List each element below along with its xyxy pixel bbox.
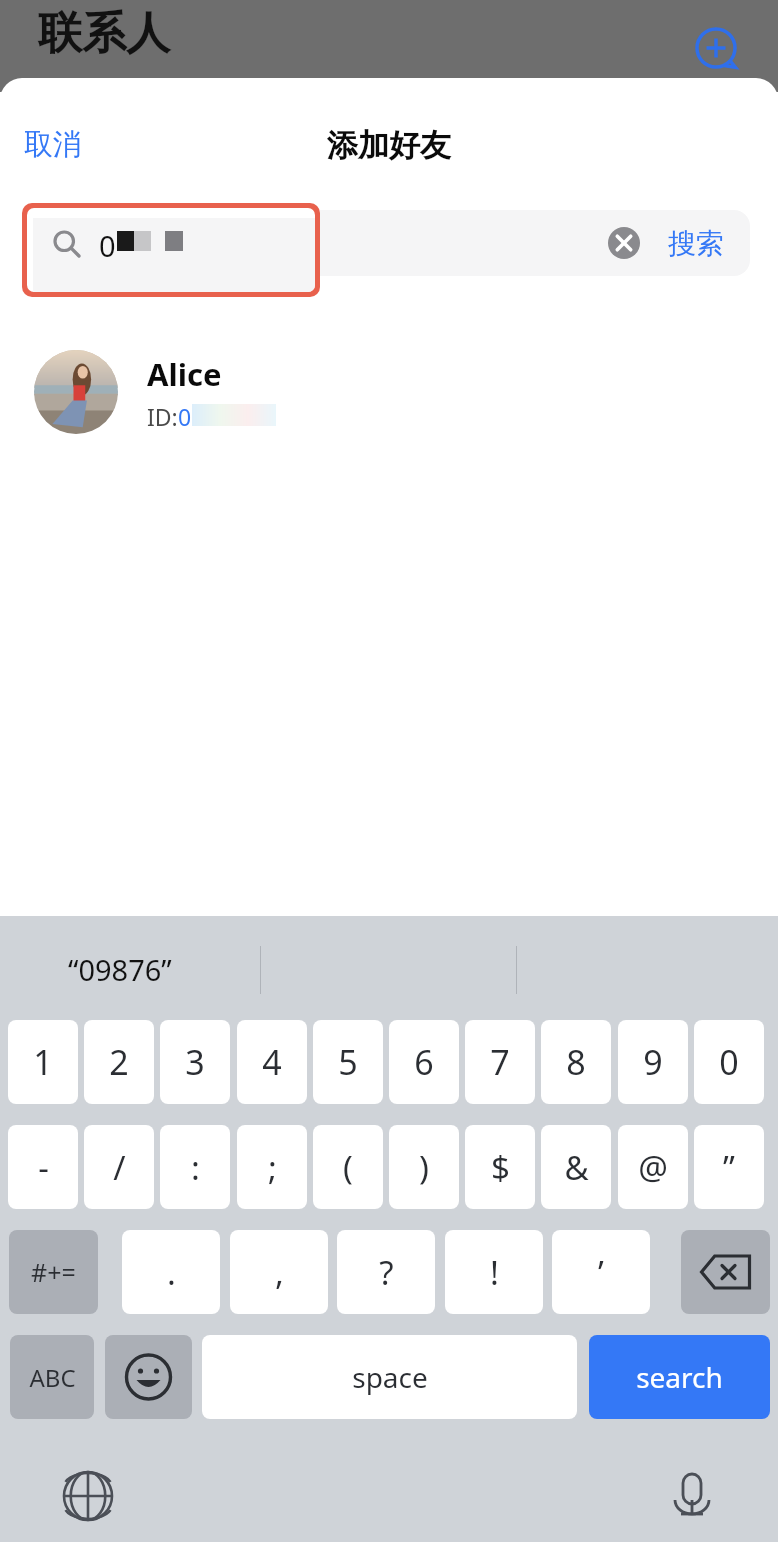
button[interactable]: ” (694, 1125, 764, 1209)
button[interactable]: / (84, 1125, 154, 1209)
button[interactable]: 2 (84, 1020, 154, 1104)
button[interactable]: 7 (465, 1020, 535, 1104)
staticText: 添加好友 (0, 126, 778, 165)
button[interactable]: , (230, 1230, 328, 1314)
button[interactable]: Add (694, 26, 738, 70)
staticText: ? (379, 1250, 394, 1295)
staticText: ” (723, 1145, 735, 1190)
staticText: 9 (643, 1039, 663, 1085)
staticText: 4 (262, 1039, 282, 1085)
button[interactable]: Switch keyboard (60, 1468, 116, 1524)
staticText: ) (419, 1145, 429, 1190)
button[interactable]: 1 (8, 1020, 78, 1104)
button[interactable]: 3 (160, 1020, 230, 1104)
button[interactable]: @ (618, 1125, 688, 1209)
button[interactable]: 8 (541, 1020, 611, 1104)
staticText: space (352, 1358, 428, 1396)
button[interactable]: ABC (10, 1335, 94, 1419)
button[interactable]: Emoji (105, 1335, 192, 1419)
staticText: #+= (31, 1255, 76, 1289)
button[interactable]: $ (465, 1125, 535, 1209)
staticText: 0 (99, 226, 116, 265)
button[interactable]: 5 (313, 1020, 383, 1104)
staticText: ’ (598, 1250, 604, 1295)
button[interactable]: space (202, 1335, 577, 1419)
button[interactable]: search (589, 1335, 770, 1419)
staticText: @ (638, 1145, 668, 1190)
staticText: search (636, 1358, 723, 1396)
staticText: 0 (100, 226, 117, 265)
staticText: & (564, 1145, 589, 1190)
button[interactable]: : (160, 1125, 230, 1209)
button[interactable]: ? (337, 1230, 435, 1314)
staticText: 6 (414, 1039, 434, 1085)
staticText: 取消 (24, 126, 82, 163)
staticText: 2 (109, 1039, 129, 1085)
button[interactable]: 9 (618, 1020, 688, 1104)
staticText: ! (490, 1250, 499, 1295)
button[interactable]: ; (237, 1125, 307, 1209)
button[interactable]: 6 (389, 1020, 459, 1104)
staticText: ABC (29, 1361, 76, 1394)
staticText: / (113, 1145, 126, 1190)
staticText: $ (491, 1145, 510, 1190)
button[interactable]: Clear text (606, 225, 642, 261)
staticText: : (191, 1145, 200, 1190)
button[interactable]: . (122, 1230, 220, 1314)
staticText: Alice (147, 353, 222, 395)
button[interactable]: Backspace (681, 1230, 770, 1314)
button[interactable]: #+= (9, 1230, 98, 1314)
button[interactable]: Alice (0, 336, 778, 448)
button[interactable]: 0 (28, 210, 750, 276)
staticText: 5 (338, 1039, 358, 1085)
staticText: ID: (147, 401, 178, 432)
staticText: 3 (185, 1039, 205, 1085)
button[interactable]: & (541, 1125, 611, 1209)
button[interactable]: ( (313, 1125, 383, 1209)
button[interactable]: 0 (694, 1020, 764, 1104)
staticText: ; (268, 1145, 277, 1190)
staticText: 搜索 (668, 226, 724, 261)
staticText: , (275, 1250, 284, 1295)
staticText: 8 (566, 1039, 586, 1085)
staticText: 0 (719, 1039, 739, 1085)
button[interactable]: 取消 (24, 126, 82, 163)
staticText: - (38, 1145, 49, 1190)
button[interactable]: 4 (237, 1020, 307, 1104)
button[interactable]: Dictate (664, 1466, 720, 1522)
button[interactable]: - (8, 1125, 78, 1209)
staticText: 1 (33, 1039, 53, 1085)
staticText: . (167, 1250, 176, 1295)
staticText: 联系人 (38, 6, 170, 61)
button[interactable]: “09876” (68, 950, 172, 989)
button[interactable]: ’ (552, 1230, 650, 1314)
staticText: ( (343, 1145, 353, 1190)
staticText: 0 (178, 401, 192, 432)
button[interactable]: ! (445, 1230, 543, 1314)
staticText: 7 (490, 1039, 510, 1085)
button[interactable]: 搜索 (668, 226, 724, 261)
button[interactable]: ) (389, 1125, 459, 1209)
